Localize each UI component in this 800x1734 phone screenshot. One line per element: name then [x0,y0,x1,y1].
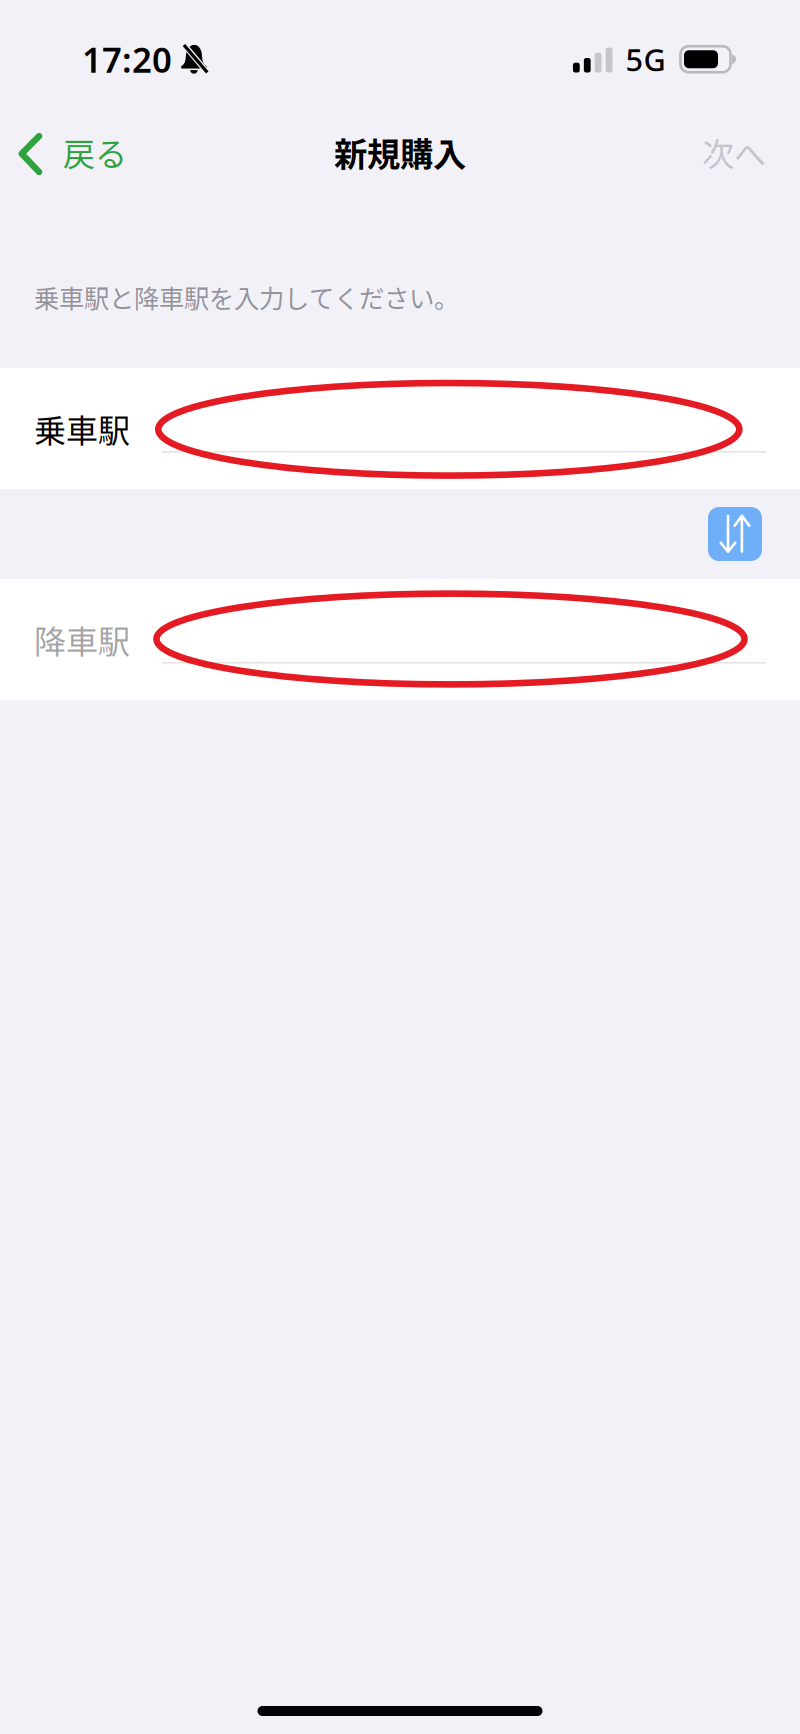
button[interactable]: 乗車駅と降車駅を入れ替える [708,507,762,561]
staticText: 新規購入 [334,128,466,176]
staticText: 次へ [702,129,766,175]
button[interactable]: 乗車駅 [0,368,800,489]
staticText: 17:20 [82,36,172,82]
button[interactable]: 戻る [0,106,143,198]
button[interactable]: 降車駅 [0,579,800,700]
staticText: 5G [625,39,665,80]
staticText: 乗車駅と降車駅を入力してください。 [34,279,459,315]
staticText: 戻る [63,129,127,175]
staticText: 降車駅 [34,616,130,663]
button[interactable]: 次へ [682,106,800,198]
staticText: 乗車駅 [34,405,130,452]
